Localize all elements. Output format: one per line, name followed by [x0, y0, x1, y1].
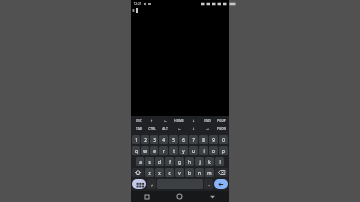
button[interactable]: 9 [209, 135, 218, 144]
button[interactable]: Recents [131, 191, 163, 202]
staticText: PGUP [217, 119, 226, 123]
staticText: i [203, 148, 205, 154]
staticText: f [169, 159, 171, 165]
button[interactable]: END [200, 117, 214, 125]
button[interactable]: Switch keyboard layout [132, 179, 146, 189]
button[interactable]: ↓ [186, 117, 200, 125]
button[interactable]: PGDN [214, 125, 228, 133]
button[interactable]: ↓ [186, 125, 200, 133]
button[interactable]: z [145, 168, 154, 177]
button[interactable]: Home [163, 191, 196, 202]
button[interactable]: → [200, 125, 214, 133]
staticText: , [151, 181, 153, 187]
staticText: v [178, 170, 181, 176]
button[interactable]: c [165, 168, 174, 177]
staticText: m [207, 170, 212, 176]
staticText: 5 [172, 137, 175, 143]
staticText: q [135, 148, 138, 154]
button[interactable]: 0 [219, 135, 228, 144]
staticText: b [188, 170, 191, 176]
button[interactable]: s [145, 157, 154, 166]
button[interactable]: o [209, 146, 218, 155]
button[interactable]: Backspace [215, 168, 228, 177]
staticText: 2 [144, 137, 147, 143]
button[interactable]: TAB [132, 125, 145, 133]
button[interactable]: ALT [158, 125, 172, 133]
staticText: 0 [222, 137, 225, 143]
staticText: j [199, 159, 201, 165]
button[interactable]: , [147, 179, 156, 189]
staticText: d [158, 159, 161, 165]
button[interactable]: r [159, 146, 168, 155]
staticText: e [153, 148, 156, 154]
staticText: s [148, 159, 151, 165]
staticText: 4 [162, 137, 165, 143]
button[interactable]: 2 [141, 135, 149, 144]
staticText: 6 [182, 137, 185, 143]
staticText: n [198, 170, 201, 176]
staticText: ↓ [192, 119, 195, 123]
staticText: → [206, 127, 209, 131]
button[interactable]: x [155, 168, 164, 177]
staticText: TAB [136, 127, 142, 131]
button[interactable]: a [136, 157, 144, 166]
button[interactable]: ↑ [145, 117, 158, 125]
button[interactable]: b [185, 168, 194, 177]
button[interactable]: e [150, 146, 158, 155]
button[interactable]: PGUP [214, 117, 228, 125]
staticText: ↓ [192, 127, 195, 131]
button[interactable]: p [219, 146, 228, 155]
button[interactable]: 6 [179, 135, 188, 144]
staticText: 7 [192, 137, 195, 143]
button[interactable]: ← [172, 125, 186, 133]
staticText: w [143, 148, 147, 154]
button[interactable]: m [205, 168, 214, 177]
button[interactable]: Back [196, 191, 229, 202]
button[interactable]: 3 [150, 135, 158, 144]
staticText: ALT [162, 127, 168, 131]
staticText: u [192, 148, 195, 154]
button[interactable]: 4 [159, 135, 168, 144]
button[interactable]: 1 [132, 135, 140, 144]
staticText: ↑ [150, 119, 153, 123]
button[interactable]: l [215, 157, 224, 166]
staticText: k [208, 159, 211, 165]
button[interactable]: v [175, 168, 184, 177]
button[interactable]: d [155, 157, 164, 166]
staticText: g [178, 159, 181, 165]
button[interactable]: 5 [169, 135, 178, 144]
button[interactable]: g [175, 157, 184, 166]
staticText: 3 [153, 137, 156, 143]
button[interactable]: w [141, 146, 149, 155]
button[interactable]: j [195, 157, 204, 166]
button[interactable]: 8 [199, 135, 208, 144]
button[interactable]: 7 [189, 135, 198, 144]
staticText: $ [132, 8, 135, 13]
button[interactable]: Shift [132, 168, 144, 177]
button[interactable]: k [205, 157, 214, 166]
staticText: l [219, 159, 221, 165]
button[interactable]: u [189, 146, 198, 155]
staticText: z [148, 170, 151, 176]
button[interactable]: h [185, 157, 194, 166]
button[interactable]: q [132, 146, 140, 155]
staticText: o [212, 148, 215, 154]
staticText: HOME [174, 119, 184, 123]
staticText: ESC [136, 119, 142, 123]
button[interactable]: ← [158, 117, 172, 125]
button[interactable]: ESC [132, 117, 145, 125]
staticText: END [204, 119, 211, 123]
button[interactable]: y [179, 146, 188, 155]
button[interactable]: t [169, 146, 178, 155]
staticText: x [158, 170, 161, 176]
button[interactable]: n [195, 168, 204, 177]
staticText: 8 [202, 137, 205, 143]
staticText: ← [164, 119, 167, 123]
button[interactable]: HOME [172, 117, 186, 125]
button[interactable]: f [165, 157, 174, 166]
button[interactable]: . [204, 179, 213, 189]
button[interactable]: CTRL [145, 125, 158, 133]
button[interactable]: i [199, 146, 208, 155]
button[interactable]: Enter [214, 179, 228, 189]
